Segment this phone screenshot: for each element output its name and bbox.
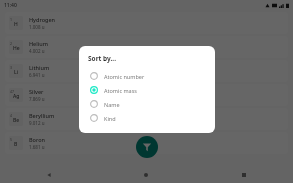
staticText: H bbox=[14, 21, 18, 28]
button[interactable]: 3 bbox=[5, 60, 288, 82]
staticText: Be bbox=[13, 117, 20, 124]
staticText: 11:40 bbox=[4, 2, 17, 9]
staticText: Li bbox=[14, 69, 19, 76]
staticText: B bbox=[14, 141, 18, 148]
staticText: Hydrogen bbox=[29, 16, 56, 23]
staticText: 7.869 u bbox=[29, 96, 45, 102]
button[interactable]: 1 bbox=[5, 12, 288, 34]
staticText: Beryllium bbox=[29, 112, 55, 119]
staticText: 47 bbox=[10, 89, 15, 94]
staticText: 2 bbox=[10, 41, 13, 46]
button[interactable]: Atomic mass bbox=[88, 83, 206, 97]
staticText: Atomic number bbox=[104, 73, 145, 80]
staticText: Sort by... bbox=[88, 54, 116, 63]
staticText: 4.002 u bbox=[29, 48, 45, 54]
staticText: 1.008 u bbox=[29, 24, 45, 30]
button[interactable]: Back bbox=[41, 167, 57, 183]
staticText: Ag bbox=[13, 93, 20, 100]
staticText: Boron bbox=[29, 136, 45, 143]
staticText: Kind bbox=[104, 115, 116, 122]
button[interactable]: 47 bbox=[5, 84, 288, 106]
button[interactable]: Recents bbox=[236, 167, 252, 183]
staticText: Atomic mass bbox=[104, 87, 137, 94]
staticText: Lithium bbox=[29, 64, 50, 71]
button[interactable]: Atomic number bbox=[88, 69, 206, 83]
staticText: 1 bbox=[10, 17, 13, 22]
button[interactable]: 2 bbox=[5, 36, 288, 58]
button[interactable]: Kind bbox=[88, 111, 206, 125]
staticText: 5 bbox=[10, 137, 13, 142]
staticText: Helium bbox=[29, 40, 48, 47]
staticText: 6.941 u bbox=[29, 72, 45, 78]
button[interactable]: Home bbox=[138, 167, 154, 183]
staticText: 9.012 u bbox=[29, 120, 45, 126]
staticText: Name bbox=[104, 101, 120, 108]
staticText: 1.681 u bbox=[29, 144, 45, 150]
button[interactable]: 5 bbox=[5, 132, 288, 154]
staticText: 4 bbox=[10, 113, 13, 118]
button[interactable]: Name bbox=[88, 97, 206, 111]
button[interactable]: Filter bbox=[136, 136, 158, 158]
staticText: He bbox=[13, 45, 20, 52]
staticText: Silver bbox=[29, 88, 44, 95]
button[interactable]: 4 bbox=[5, 108, 288, 130]
staticText: 3 bbox=[10, 65, 13, 70]
